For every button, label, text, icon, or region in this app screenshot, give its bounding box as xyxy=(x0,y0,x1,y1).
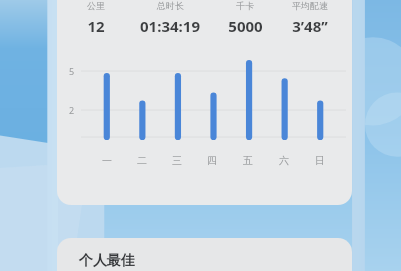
staticText: 3’48’’ xyxy=(292,16,328,36)
staticText: 个人最佳 xyxy=(79,252,135,270)
staticText: 总时长 xyxy=(157,0,184,11)
staticText: 12 xyxy=(87,16,105,36)
staticText: 千卡 xyxy=(236,0,254,11)
staticText: 六 xyxy=(279,154,289,167)
staticText: 三 xyxy=(172,154,182,167)
button[interactable]: 千卡 xyxy=(213,0,277,36)
staticText: 五 xyxy=(243,154,253,167)
staticText: 日 xyxy=(315,154,325,167)
staticText: 01:34:19 xyxy=(140,16,200,36)
staticText: 平均配速 xyxy=(292,0,328,11)
staticText: 5 xyxy=(69,65,75,77)
staticText: 5000 xyxy=(228,16,263,36)
staticText: 公里 xyxy=(87,0,105,11)
button[interactable]: 平均配速 xyxy=(277,0,342,36)
button[interactable]: 公里 xyxy=(57,0,352,205)
staticText: 一 xyxy=(102,154,112,167)
staticText: 2 xyxy=(69,104,75,116)
staticText: 四 xyxy=(207,154,217,167)
button[interactable]: 总时长 xyxy=(127,0,213,36)
staticText: 二 xyxy=(137,154,147,167)
button[interactable]: 个人最佳 xyxy=(57,238,352,271)
button[interactable]: 公里 xyxy=(65,0,127,36)
